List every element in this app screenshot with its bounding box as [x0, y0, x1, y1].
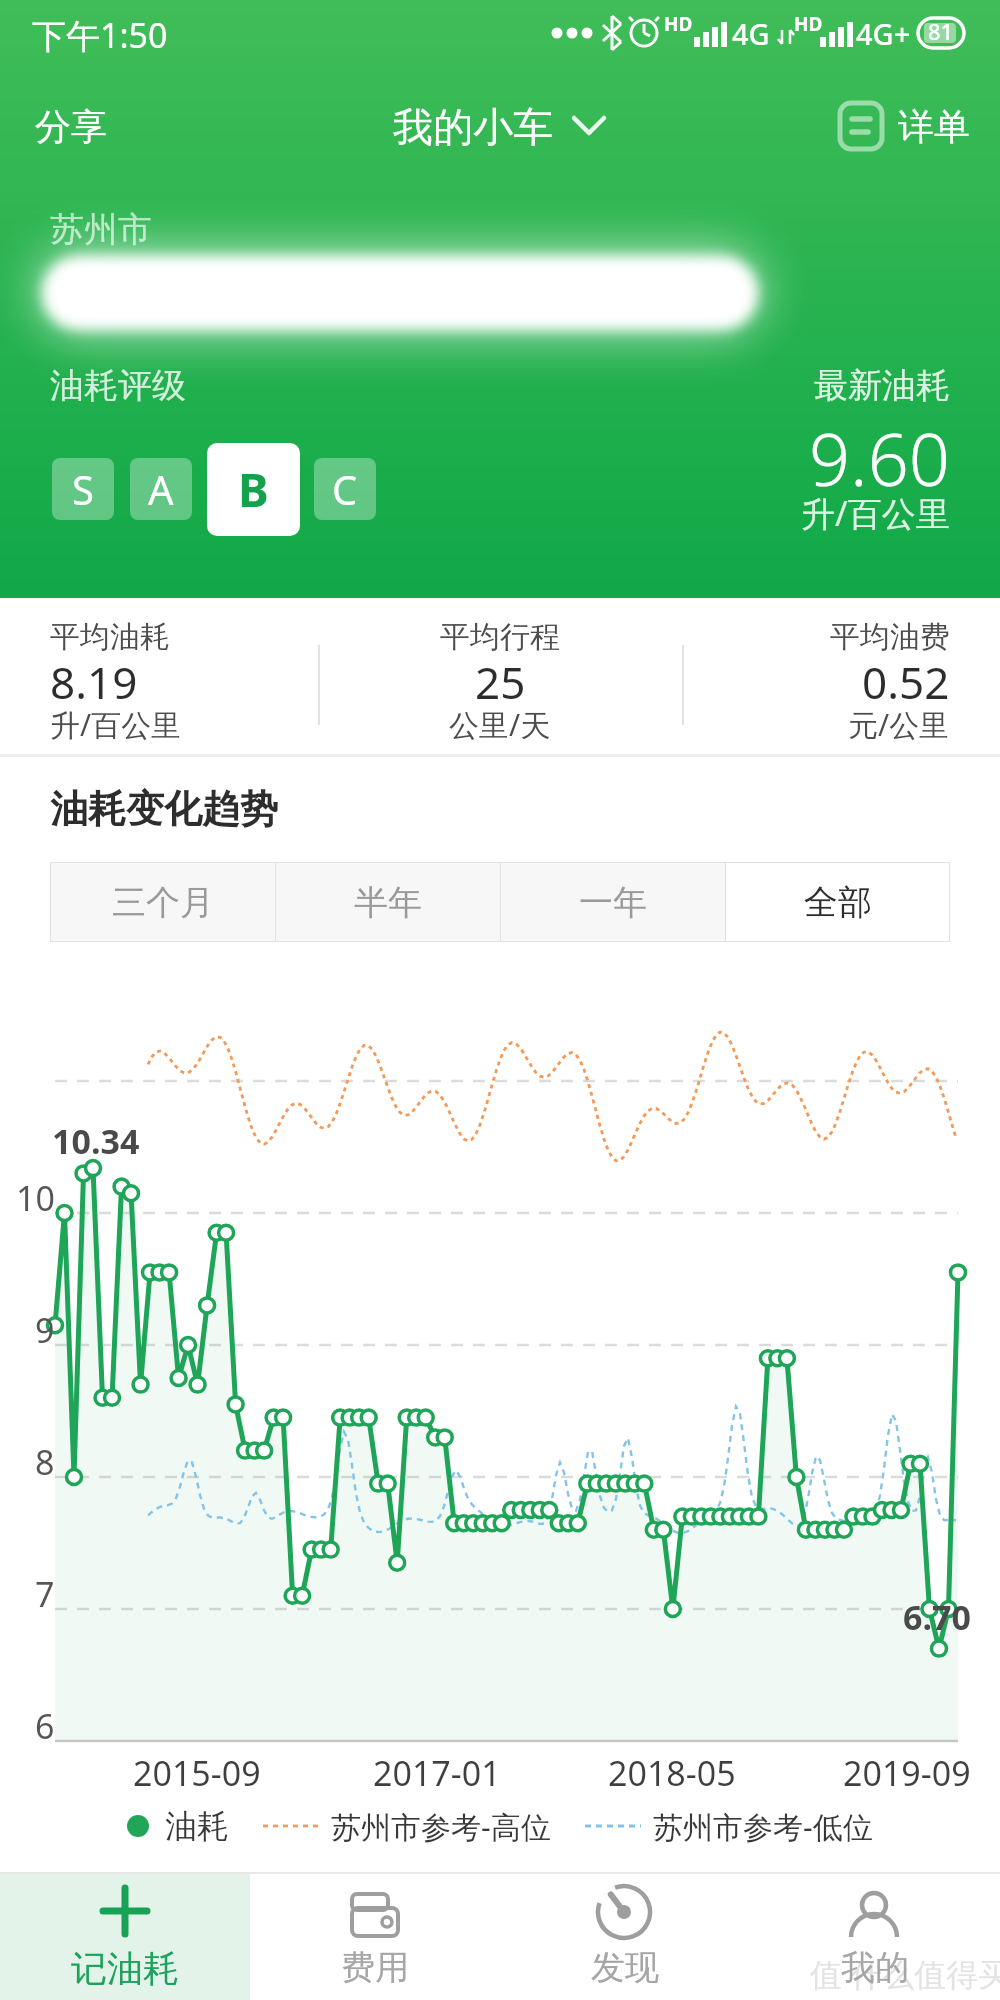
staticText: 油耗变化趋势	[50, 785, 278, 833]
staticText: 分享	[35, 104, 107, 149]
staticText: 8	[35, 1439, 55, 1485]
staticText: 一年	[579, 881, 647, 924]
staticText: A	[148, 462, 174, 516]
staticText: 平均行程	[440, 618, 560, 656]
staticText: 苏州市	[50, 208, 152, 251]
staticText: 苏州市参考-高位	[331, 1806, 551, 1847]
staticText: 油耗	[165, 1806, 229, 1846]
staticText: 4G+	[856, 14, 911, 53]
staticText: 81	[928, 16, 954, 46]
staticText: 苏州市参考-低位	[653, 1806, 873, 1847]
staticText: 我的	[841, 1946, 909, 1989]
staticText: HD	[664, 11, 693, 37]
staticText: 发现	[591, 1946, 659, 1989]
staticText: 0.52	[862, 652, 950, 712]
staticText: 三个月	[112, 881, 214, 924]
staticText: 油耗评级	[50, 364, 186, 407]
staticText: 2018-05	[608, 1750, 736, 1796]
staticText: C	[332, 462, 358, 516]
staticText: 9.60	[809, 409, 950, 507]
staticText: 2019-09	[843, 1750, 971, 1796]
staticText: 平均油耗	[50, 618, 170, 656]
staticText: 记油耗	[71, 1946, 179, 1991]
staticText: 公里/天	[449, 704, 551, 745]
staticText: 8.19	[50, 652, 138, 712]
staticText: 6	[35, 1703, 55, 1749]
staticText: 全部	[804, 881, 872, 924]
staticText: 升/百公里	[801, 490, 950, 536]
staticText: 下午1:50	[32, 12, 168, 58]
staticText: B	[238, 458, 269, 521]
staticText: 2017-01	[373, 1750, 501, 1796]
staticText: HD	[794, 11, 823, 37]
staticText: 10	[16, 1175, 55, 1221]
staticText: 详单	[898, 104, 970, 149]
staticText: 9	[35, 1307, 55, 1353]
staticText: 10.34	[52, 1118, 140, 1164]
staticText: 我的小车	[393, 102, 553, 152]
staticText: 7	[35, 1571, 55, 1617]
staticText: 升/百公里	[50, 704, 182, 745]
staticText: 半年	[354, 881, 422, 924]
staticText: 4G	[732, 14, 770, 53]
staticText: 6.70	[903, 1594, 971, 1640]
staticText: 2015-09	[133, 1750, 261, 1796]
staticText: 最新油耗	[814, 364, 950, 407]
staticText: 元/公里	[848, 704, 950, 745]
staticText: 费用	[341, 1946, 409, 1989]
staticText: 平均油费	[830, 618, 950, 656]
staticText: 值 什么值得买	[810, 1952, 1000, 1996]
staticText: S	[72, 462, 94, 516]
staticText: 25	[475, 652, 526, 712]
